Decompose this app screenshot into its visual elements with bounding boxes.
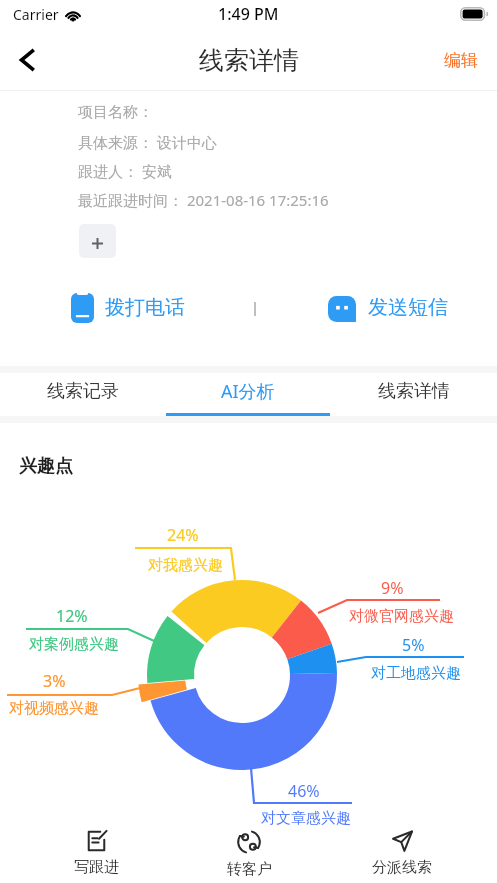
button[interactable]: Back <box>0 32 54 88</box>
staticText: 跟进人： 安斌 <box>78 161 172 181</box>
button[interactable]: AI分析 <box>165 373 331 416</box>
staticText: 3% <box>43 670 66 692</box>
staticText: 兴趣点 <box>19 455 73 478</box>
staticText: 5% <box>402 634 425 656</box>
staticText: 发送短信 <box>368 295 448 320</box>
staticText: 1:49 PM <box>218 3 279 25</box>
staticText: 24% <box>167 524 199 546</box>
button[interactable]: 分派线索 <box>364 827 440 883</box>
staticText: 项目名称： <box>78 103 153 122</box>
button[interactable]: 编辑 <box>425 32 497 88</box>
staticText: AI分析 <box>221 379 275 404</box>
staticText: 对我感兴趣 <box>148 556 223 575</box>
staticText: 对案例感兴趣 <box>29 635 119 654</box>
staticText: Carrier <box>13 5 59 24</box>
staticText: 具体来源： 设计中心 <box>78 132 217 152</box>
button[interactable]: 线索详情 <box>331 373 497 416</box>
staticText: 分派线索 <box>372 858 432 877</box>
button[interactable]: 写跟进 <box>58 827 134 883</box>
button[interactable]: 转客户 <box>211 827 287 883</box>
button[interactable]: Add attachment <box>79 224 116 258</box>
staticText: 最近跟进时间： 2021-08-16 17:25:16 <box>78 190 329 210</box>
staticText: 线索详情 <box>378 380 450 403</box>
staticText: 编辑 <box>444 50 478 71</box>
staticText: 写跟进 <box>74 858 119 877</box>
staticText: 对微官网感兴趣 <box>349 607 454 626</box>
button[interactable]: 发送短信 <box>300 280 475 360</box>
button[interactable]: 线索记录 <box>0 373 165 416</box>
staticText: 线索记录 <box>47 380 119 403</box>
staticText: 9% <box>381 577 404 599</box>
staticText: 对工地感兴趣 <box>371 664 461 683</box>
staticText: 转客户 <box>227 860 272 879</box>
staticText: 46% <box>288 780 320 802</box>
button[interactable]: 拨打电话 <box>40 280 215 360</box>
staticText: 拨打电话 <box>105 295 185 320</box>
staticText: 12% <box>56 605 88 627</box>
staticText: 对视频感兴趣 <box>9 699 99 718</box>
staticText: 线索详情 <box>199 45 299 76</box>
staticText: 对文章感兴趣 <box>261 809 351 828</box>
